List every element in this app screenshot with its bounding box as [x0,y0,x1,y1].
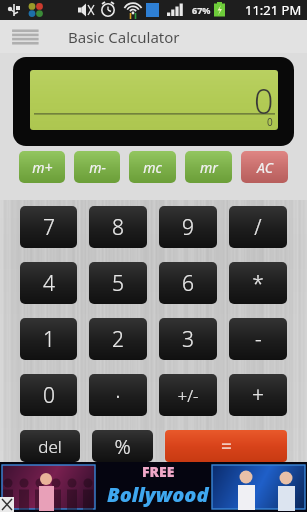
button[interactable]: 2 [89,318,147,360]
button[interactable]: +/- [159,374,217,416]
button[interactable]: 1 [20,318,77,360]
button[interactable]: 3 [159,318,217,360]
staticText: 2 [112,325,124,354]
staticText: 0 [267,115,273,129]
staticText: 1 [43,325,55,354]
staticText: 9 [182,213,194,242]
staticText: mc [143,158,162,177]
staticText: - [255,325,262,354]
staticText: 5 [112,269,124,298]
staticText: 6 [182,269,194,298]
button[interactable]: 6 [159,262,217,304]
staticText: % [114,433,131,460]
staticText: FREE [142,462,175,481]
staticText: * [252,269,264,298]
button[interactable]: / [229,206,287,248]
button[interactable]: 8 [89,206,147,248]
staticText: = [221,433,232,459]
staticText: 0 [254,78,274,124]
button[interactable]: 5 [89,262,147,304]
staticText: +/- [177,384,199,407]
button[interactable]: m+ [19,151,65,183]
button[interactable]: * [229,262,287,304]
button[interactable]: AC [241,151,288,183]
staticText: m+ [32,158,53,177]
staticText: 8 [112,213,124,242]
button[interactable]: mr [185,151,232,183]
staticText: 11:21 PM [245,1,302,19]
button[interactable]: = [165,430,287,462]
staticText: · [115,380,121,410]
button[interactable]: mc [129,151,176,183]
button[interactable]: 7 [20,206,77,248]
button[interactable]: 0 [20,374,77,416]
staticText: 7 [43,213,55,242]
staticText: mr [200,158,218,177]
button[interactable]: m- [74,151,120,183]
staticText: + [252,381,264,410]
staticText: m- [89,158,106,177]
staticText: Bollywood [107,481,209,508]
button[interactable]: 4 [20,262,77,304]
button[interactable]: - [229,318,287,360]
staticText: 4 [43,269,55,298]
staticText: Basic Calculator [68,27,180,47]
staticText: 0 [43,381,55,410]
button[interactable]: + [229,374,287,416]
button[interactable]: del [20,430,80,462]
staticText: 3 [182,325,194,354]
button[interactable]: FREE [0,462,307,512]
button[interactable]: 9 [159,206,217,248]
staticText: 67% [192,4,211,16]
staticText: del [38,435,62,458]
button[interactable]: % [92,430,153,462]
button[interactable]: · [89,374,147,416]
staticText: / [254,213,262,242]
button[interactable]: Menu [8,24,42,50]
staticText: AC [257,158,273,177]
